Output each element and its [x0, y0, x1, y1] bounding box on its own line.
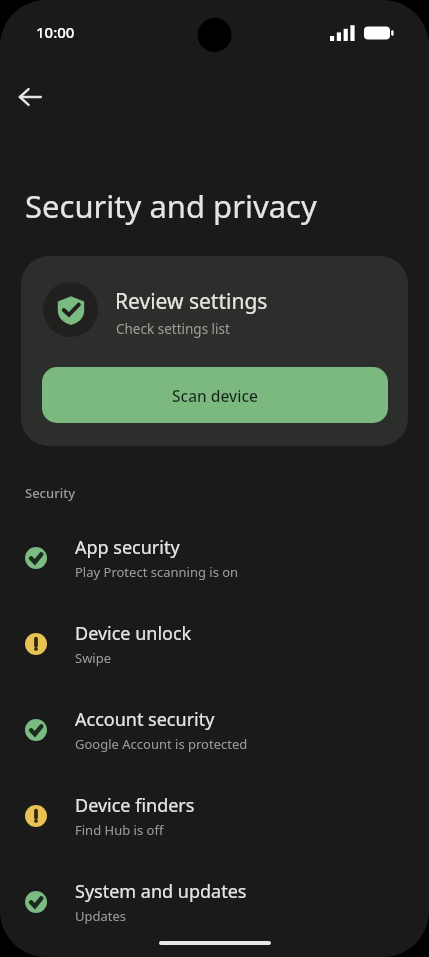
staticText: Updates — [75, 907, 127, 925]
staticText: Scan device — [172, 385, 258, 406]
staticText: Google Account is protected — [75, 735, 248, 753]
button[interactable]: Device unlock — [0, 608, 429, 680]
staticText: Find Hub is off — [75, 821, 164, 839]
button[interactable]: System and updates — [0, 866, 429, 938]
staticText: Security — [25, 484, 75, 502]
staticText: Account security — [75, 707, 215, 732]
staticText: Device finders — [75, 793, 195, 818]
staticText: Check settings list — [116, 320, 230, 338]
staticText: Security and privacy — [25, 185, 317, 227]
button[interactable]: Back — [9, 76, 51, 118]
button[interactable]: Account security — [0, 694, 429, 766]
staticText: System and updates — [75, 879, 247, 904]
staticText: Play Protect scanning is on — [75, 563, 239, 581]
button[interactable]: Review settings — [21, 256, 408, 446]
button[interactable]: App security — [0, 522, 429, 594]
button[interactable]: Device finders — [0, 780, 429, 852]
staticText: App security — [75, 535, 180, 560]
button[interactable]: Scan device — [42, 367, 388, 423]
staticText: Review settings — [115, 287, 268, 316]
staticText: Device unlock — [75, 621, 192, 646]
staticText: Swipe — [75, 649, 112, 667]
staticText: 10:00 — [36, 22, 75, 42]
